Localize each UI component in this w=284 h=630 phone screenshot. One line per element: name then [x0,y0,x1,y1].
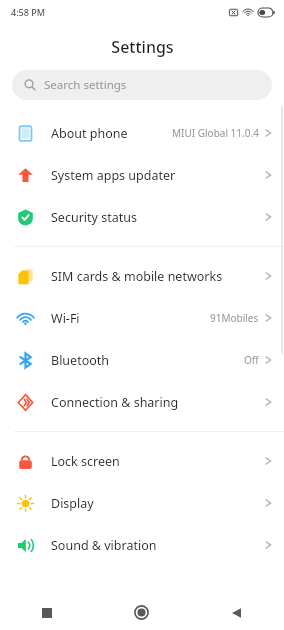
staticText: Display [51,495,94,512]
other: Sound and vibration [17,537,34,554]
button[interactable]: Back [189,595,284,630]
staticText: About phone [51,125,128,142]
staticText: Wi-Fi [51,310,80,327]
staticText: 91Mobiles [210,311,259,325]
other: System apps updater [17,167,34,184]
button[interactable]: Sound and vibration [0,524,284,566]
staticText: Bluetooth [51,352,110,369]
button[interactable]: Wi-Fi [0,297,284,339]
button[interactable]: Home [94,595,189,630]
button[interactable]: Search settings [12,70,272,100]
button[interactable]: Recents [0,595,94,630]
staticText: Settings [111,36,174,58]
staticText: MIUI Global 11.0.4 [172,126,259,140]
staticText: Off [244,353,259,367]
staticText: System apps updater [51,167,176,184]
staticText: Search settings [44,77,127,93]
other: Wi-Fi [17,310,34,327]
button[interactable]: Lock screen [0,440,284,482]
button[interactable]: Security status [0,196,284,238]
other: About phone [17,125,34,142]
staticText: Connection & sharing [51,394,179,411]
other: SIM cards and mobile networks [17,268,34,285]
other: Connection and sharing [17,394,34,411]
staticText: SIM cards & mobile networks [51,268,223,285]
button[interactable]: Display [0,482,284,524]
other: Display [17,495,34,512]
button[interactable]: Connection and sharing [0,381,284,423]
staticText: Lock screen [51,453,120,470]
other: Security status [17,209,34,226]
staticText: Security status [51,209,137,226]
staticText: Sound & vibration [51,537,157,554]
staticText: 4:58 PM [11,6,45,18]
button[interactable]: About phone [0,112,284,154]
other: Lock screen [17,453,34,470]
button[interactable]: System apps updater [0,154,284,196]
other: Bluetooth [17,352,34,369]
button[interactable]: SIM cards and mobile networks [0,255,284,297]
button[interactable]: Bluetooth [0,339,284,381]
